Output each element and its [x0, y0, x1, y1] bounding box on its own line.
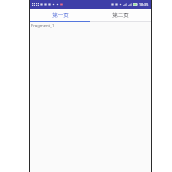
button[interactable]: 第二页 — [90, 9, 151, 21]
staticText: 第一页 — [52, 12, 69, 19]
staticText: Fragment_1 — [31, 23, 55, 29]
staticText: 18:35 — [139, 2, 149, 7]
button[interactable]: 第一页 — [30, 9, 90, 21]
staticText: 第二页 — [112, 12, 129, 19]
